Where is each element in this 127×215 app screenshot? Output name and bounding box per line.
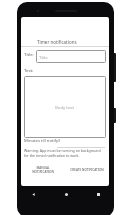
button[interactable]: Body text <box>24 76 106 138</box>
button[interactable]: 1 <box>57 137 105 148</box>
staticText: Title: <box>24 51 34 57</box>
staticText: MANUAL NOTIFICATION <box>32 166 54 174</box>
staticText: Text: <box>24 67 34 73</box>
staticText: Body text <box>55 104 75 110</box>
button[interactable]: MANUAL NOTIFICATION <box>21 161 65 179</box>
staticText: 1 <box>58 138 61 144</box>
button[interactable]: CREATE NOTIFICATION <box>65 161 109 179</box>
button[interactable]: Back <box>17 186 50 202</box>
button[interactable]: Recent apps <box>82 186 114 202</box>
staticText: Title <box>39 54 48 60</box>
button[interactable]: Home <box>50 186 82 202</box>
staticText: Timer notifications <box>37 39 77 45</box>
staticText: CREATE NOTIFICATION <box>70 168 104 172</box>
button[interactable]: Title <box>36 50 106 63</box>
staticText: Minutes till notify: <box>24 138 60 144</box>
staticText: Warning: App must be running on backgrou… <box>24 148 106 158</box>
